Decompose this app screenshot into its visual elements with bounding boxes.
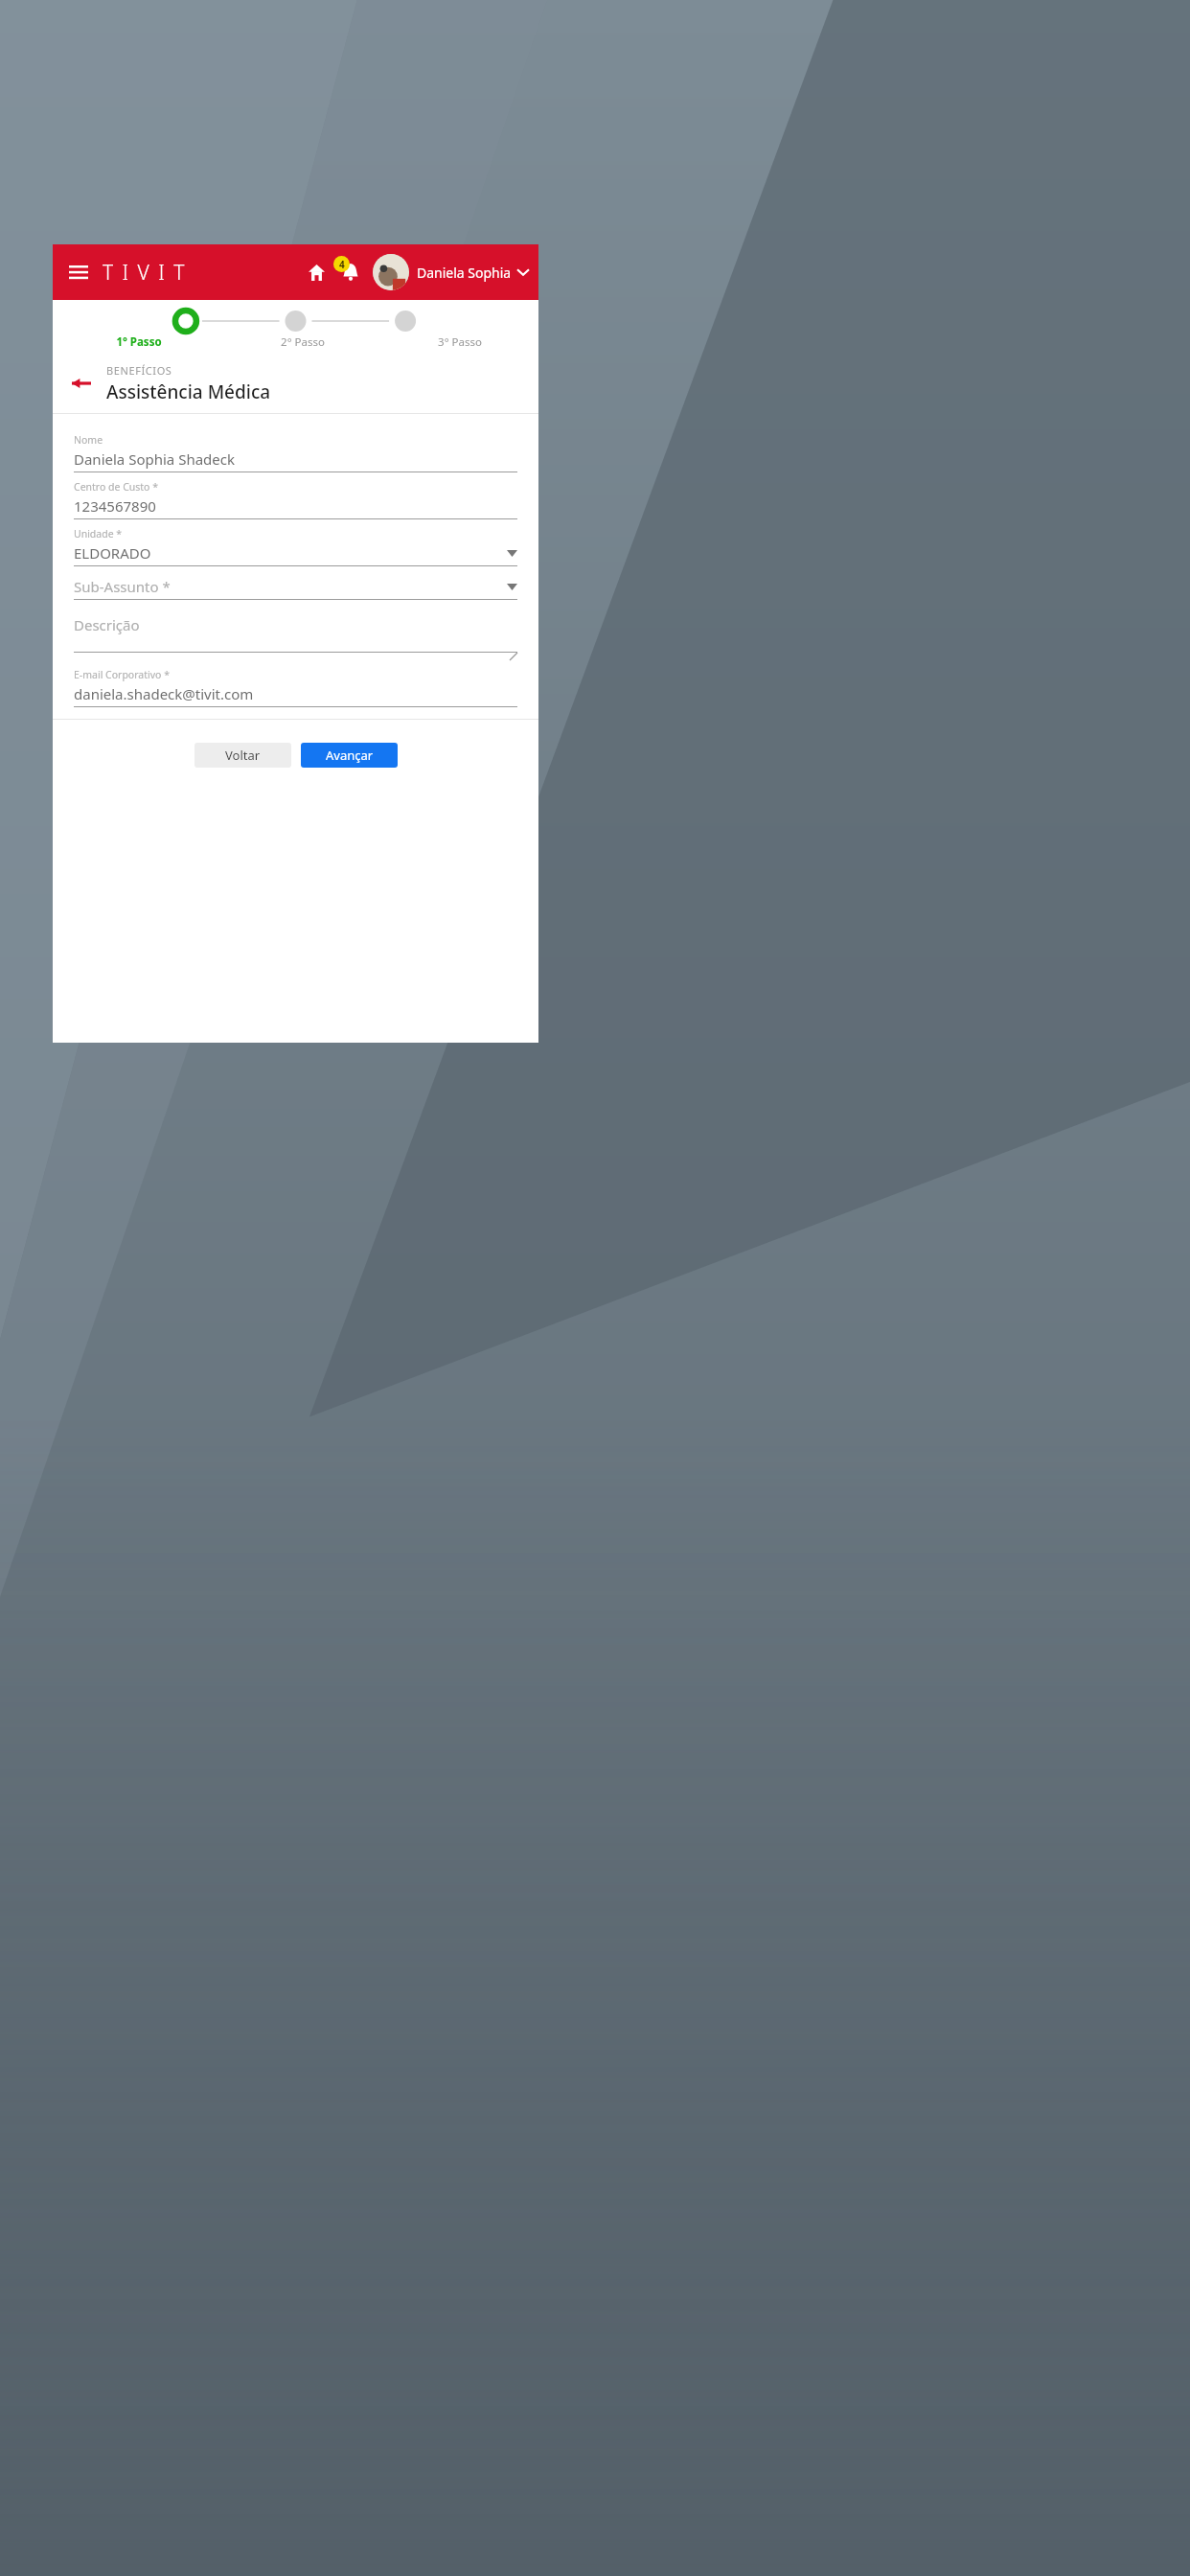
staticText: 1234567890 [74,496,517,516]
staticText: Centro de Custo * [74,480,158,494]
button[interactable]: Menu [62,256,95,288]
staticText: Assistência Médica [106,379,271,404]
button[interactable]: Home [300,256,332,288]
staticText: Daniela Sophia [417,264,512,282]
button[interactable]: Voltar [195,743,291,768]
staticText: 2° Passo [281,334,325,350]
staticText: Voltar [225,747,261,764]
staticText: E-mail Corporativo * [74,668,170,681]
staticText: Nome [74,433,103,447]
staticText: Unidade * [74,527,123,540]
button[interactable]: Sub-Assunto * [74,566,517,600]
staticText: Daniela Sophia Shadeck [74,449,517,469]
staticText: Avançar [326,747,374,764]
button[interactable]: E-mail Corporativo * [74,660,517,707]
staticText: T I V I T [103,259,187,287]
button[interactable]: Avançar [301,743,398,768]
staticText: Sub-Assunto * [74,577,507,596]
staticText: BENEFÍCIOS [106,363,172,378]
staticText: 1° Passo [116,334,162,350]
button[interactable]: Centro de Custo * [74,472,517,519]
button[interactable]: Nome [74,425,517,472]
button[interactable]: Descrição [74,600,517,660]
staticText: 4 [339,258,345,271]
button[interactable]: Daniela Sophia [369,254,529,290]
button[interactable]: 3° Passo [381,334,538,350]
staticText: daniela.shadeck@tivit.com [74,684,517,703]
button[interactable]: Unidade * [74,519,517,566]
staticText: ELDORADO [74,543,507,563]
button[interactable]: 2° Passo [224,334,381,350]
staticText: Descrição [74,615,517,634]
button[interactable]: 1° Passo [53,334,224,350]
staticText: 3° Passo [438,334,482,350]
button[interactable]: Back [64,366,99,401]
button[interactable]: Notifications [332,254,369,290]
